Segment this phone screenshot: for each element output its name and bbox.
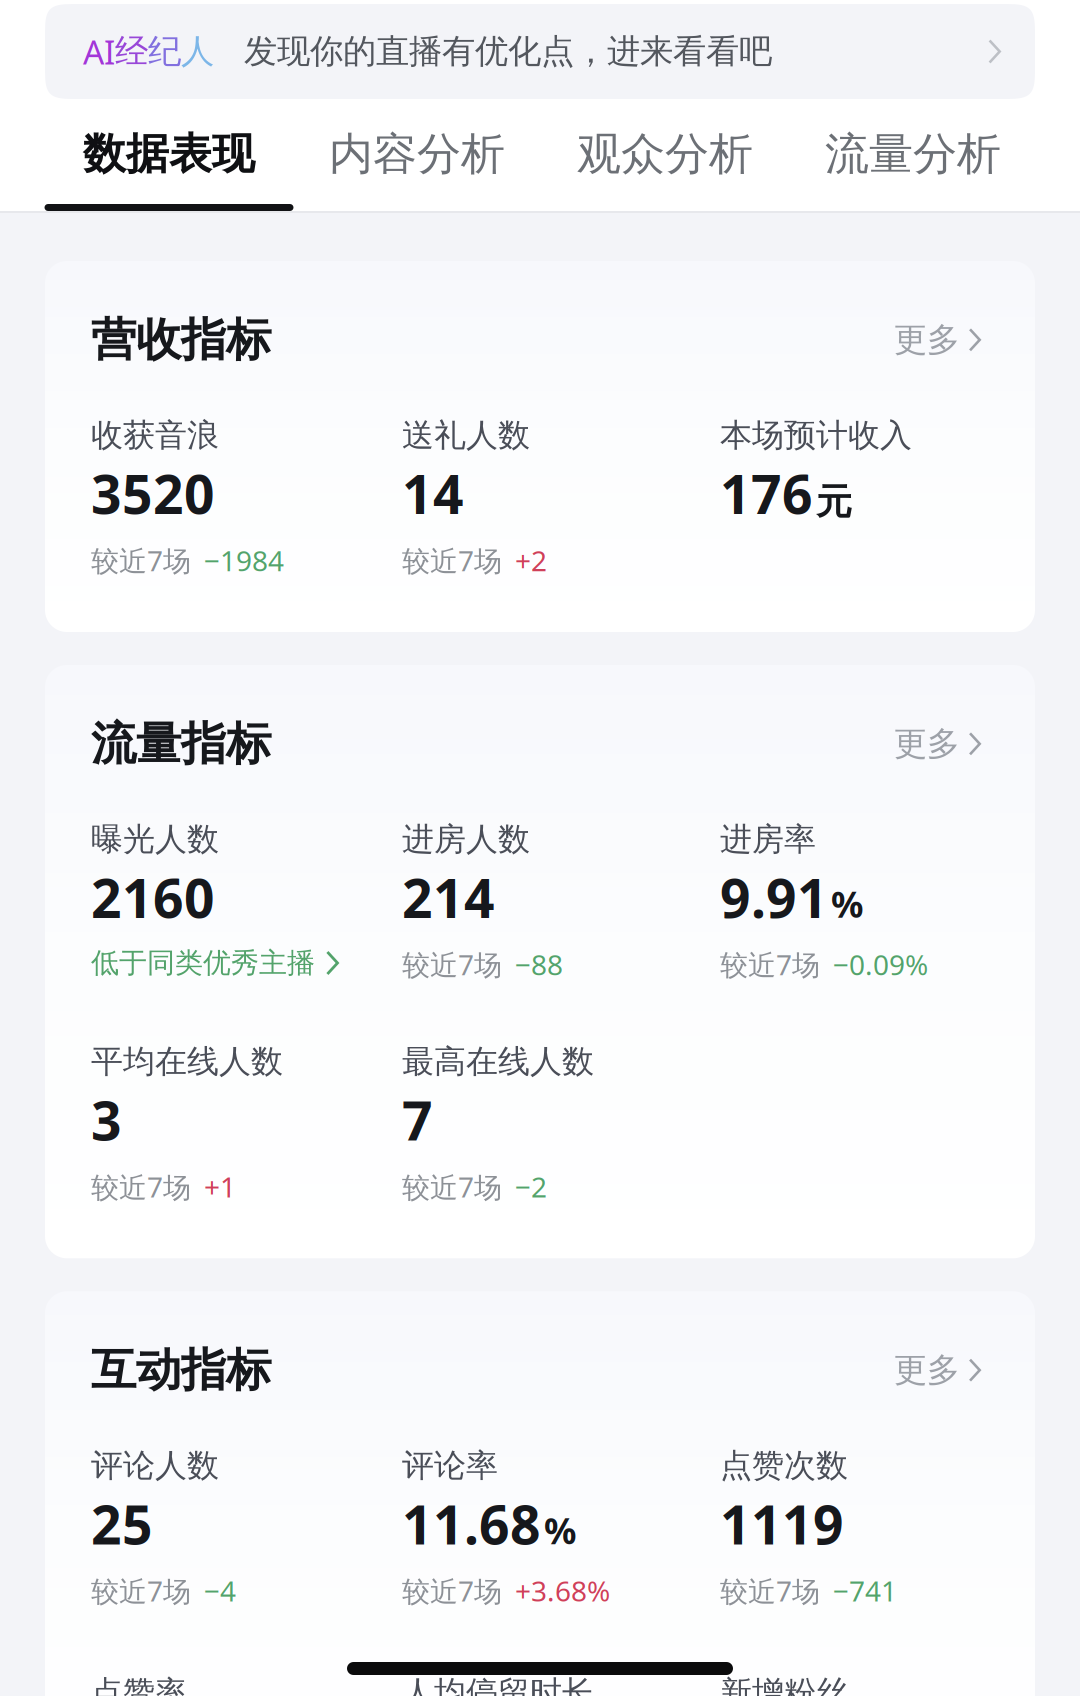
button[interactable]: 更多 流量指标 bbox=[894, 723, 989, 764]
staticText: 点赞次数 bbox=[720, 1446, 848, 1485]
staticText: 点赞率 bbox=[91, 1673, 187, 1696]
staticText: 1119 bbox=[720, 1488, 844, 1559]
staticText: % bbox=[831, 880, 863, 928]
staticText: −1984 bbox=[204, 542, 284, 579]
staticText: % bbox=[544, 1506, 576, 1554]
staticText: 较近7场 bbox=[402, 946, 502, 983]
staticText: +2 bbox=[515, 542, 547, 579]
staticText: 人 bbox=[181, 31, 214, 72]
button[interactable]: 进房人数 bbox=[402, 820, 720, 983]
staticText: 人均停留时长 bbox=[402, 1673, 594, 1696]
staticText: 较近7场 bbox=[402, 1572, 502, 1609]
button[interactable]: 更多 营收指标 bbox=[894, 319, 989, 360]
staticText: −88 bbox=[515, 946, 563, 983]
button[interactable]: 内容分析 bbox=[328, 131, 506, 221]
staticText: 本场预计收入 bbox=[720, 416, 912, 455]
staticText: 更多 bbox=[894, 1350, 960, 1391]
staticText: +3.68% bbox=[515, 1572, 610, 1609]
staticText: 流量分析 bbox=[825, 127, 1001, 181]
staticText: 3520 bbox=[91, 458, 215, 529]
staticText: 收获音浪 bbox=[91, 416, 219, 455]
staticText: 纪 bbox=[148, 31, 181, 72]
staticText: 发现你的直播有优化点，进来看看吧 bbox=[214, 31, 772, 72]
button[interactable]: 流量分析 bbox=[824, 131, 1002, 221]
staticText: 元 bbox=[816, 480, 852, 524]
staticText: 较近7场 bbox=[720, 1572, 820, 1609]
staticText: 数据表现 bbox=[83, 128, 255, 180]
staticText: −4 bbox=[204, 1572, 236, 1609]
button[interactable]: 收获音浪 bbox=[91, 416, 402, 579]
staticText: +1 bbox=[204, 1168, 236, 1205]
staticText: −0.09% bbox=[833, 946, 928, 983]
staticText: 7 bbox=[402, 1084, 433, 1155]
staticText: 评论人数 bbox=[91, 1446, 219, 1485]
button[interactable]: 数据表现 bbox=[80, 131, 258, 221]
staticText: 营收指标 bbox=[91, 312, 271, 368]
staticText: 3 bbox=[91, 1084, 122, 1155]
staticText: 观众分析 bbox=[577, 127, 753, 181]
button[interactable]: 评论率 bbox=[402, 1446, 720, 1609]
staticText: 较近7场 bbox=[91, 542, 191, 579]
staticText: 11.68 bbox=[402, 1488, 541, 1559]
staticText: 互动指标 bbox=[91, 1342, 271, 1398]
staticText: 经 bbox=[115, 31, 148, 72]
button[interactable]: 进房率 bbox=[720, 820, 1032, 983]
button[interactable]: 点赞次数 bbox=[720, 1446, 1032, 1609]
staticText: 214 bbox=[402, 862, 495, 933]
staticText: 曝光人数 bbox=[91, 820, 219, 859]
staticText: 送礼人数 bbox=[402, 416, 530, 455]
staticText: 较近7场 bbox=[91, 1168, 191, 1205]
button[interactable]: 新增粉丝 bbox=[720, 1673, 1032, 1696]
button[interactable]: 低于同类优秀主播 bbox=[91, 946, 349, 980]
button[interactable]: AI经纪人 发现你的直播有优化点，进来看看吧 bbox=[45, 4, 1035, 99]
button[interactable]: 平均在线人数 bbox=[91, 1042, 402, 1205]
staticText: 较近7场 bbox=[402, 542, 502, 579]
staticText: 评论率 bbox=[402, 1446, 498, 1485]
button[interactable]: 更多 互动指标 bbox=[894, 1350, 989, 1391]
button[interactable]: 点赞率 bbox=[91, 1673, 402, 1696]
button[interactable]: 人均停留时长 bbox=[402, 1673, 720, 1696]
button[interactable]: 评论人数 bbox=[91, 1446, 402, 1609]
staticText: AI bbox=[83, 29, 115, 74]
staticText: 更多 bbox=[894, 319, 960, 360]
staticText: −741 bbox=[833, 1572, 897, 1609]
staticText: 进房率 bbox=[720, 820, 816, 859]
button[interactable]: 最高在线人数 bbox=[402, 1042, 720, 1205]
staticText: 内容分析 bbox=[329, 127, 505, 181]
button[interactable]: 曝光人数 bbox=[91, 820, 402, 980]
staticText: 流量指标 bbox=[91, 716, 271, 772]
staticText: 较近7场 bbox=[720, 946, 820, 983]
staticText: 9.91 bbox=[720, 862, 828, 933]
button[interactable]: 观众分析 bbox=[576, 131, 754, 221]
staticText: 176 bbox=[720, 458, 813, 529]
button[interactable]: 本场预计收入 bbox=[720, 416, 1032, 529]
staticText: 低于同类优秀主播 bbox=[91, 946, 315, 980]
staticText: 进房人数 bbox=[402, 820, 530, 859]
staticText: 14 bbox=[402, 458, 464, 529]
staticText: 较近7场 bbox=[402, 1168, 502, 1205]
staticText: 更多 bbox=[894, 723, 960, 764]
staticText: 平均在线人数 bbox=[91, 1042, 283, 1081]
staticText: 25 bbox=[91, 1488, 153, 1559]
staticText: 最高在线人数 bbox=[402, 1042, 594, 1081]
staticText: −2 bbox=[515, 1168, 547, 1205]
staticText: 新增粉丝 bbox=[720, 1673, 848, 1696]
staticText: 2160 bbox=[91, 862, 215, 933]
staticText: 较近7场 bbox=[91, 1572, 191, 1609]
button[interactable]: 送礼人数 bbox=[402, 416, 720, 579]
